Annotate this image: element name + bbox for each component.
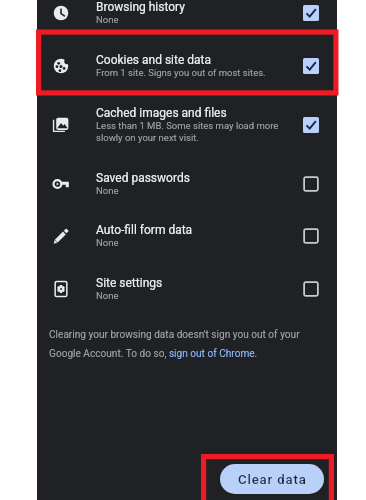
button[interactable]: Cookies and site data [37,53,337,78]
staticText: Saved passwords [96,171,190,185]
staticText: Cookies and site data [96,53,212,67]
staticText: None [96,290,119,301]
staticText: From 1 site. Signs you out of most sites… [96,67,266,78]
staticText: Clear data [238,472,307,487]
staticText: None [96,185,119,196]
staticText: None [96,237,119,248]
button[interactable]: Clear data [220,464,324,494]
button[interactable]: Cached images and files [37,106,337,143]
button[interactable]: Saved passwords [37,171,337,196]
staticText: Less than 1 MB. Some sites may load more… [96,120,279,143]
staticText: Site settings [96,276,163,290]
staticText: Browsing history [96,0,185,14]
staticText: Auto-fill form data [96,223,193,237]
button[interactable]: Site settings [37,276,337,301]
staticText: Cached images and files [96,106,227,120]
button[interactable]: Auto-fill form data [37,223,337,248]
staticText: Clearing your browsing data doesn't sign… [49,329,307,360]
staticText: None [96,14,119,25]
button[interactable]: Browsing history [37,0,337,25]
